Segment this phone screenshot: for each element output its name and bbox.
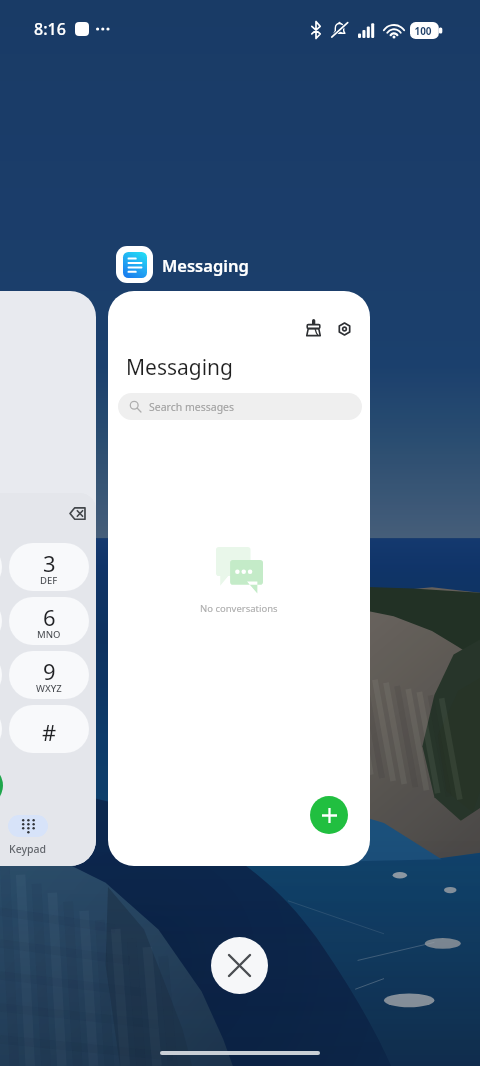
button[interactable] bbox=[0, 651, 2, 699]
staticText: 3 bbox=[43, 548, 56, 578]
button[interactable]: New conversation bbox=[310, 796, 348, 834]
staticText: Keypad bbox=[9, 842, 47, 856]
staticText: MNO bbox=[37, 628, 61, 641]
button[interactable]: Keypad bbox=[8, 815, 48, 837]
staticText: 8:16 bbox=[34, 18, 66, 40]
staticText: 6 bbox=[43, 602, 56, 632]
button[interactable] bbox=[0, 597, 2, 645]
staticText: Search messages bbox=[149, 400, 235, 414]
staticText: 100 bbox=[414, 24, 432, 38]
button[interactable] bbox=[0, 543, 2, 591]
button[interactable]: 3 bbox=[9, 543, 89, 591]
button[interactable]: Settings bbox=[330, 315, 358, 343]
button[interactable]: 6 bbox=[9, 597, 89, 645]
button[interactable]: Backspace bbox=[63, 499, 91, 527]
staticText: No conversations bbox=[200, 602, 278, 615]
button[interactable]: 9 bbox=[9, 651, 89, 699]
button[interactable] bbox=[0, 705, 2, 753]
button[interactable]: Search messages bbox=[118, 393, 362, 420]
button[interactable]: # bbox=[9, 705, 89, 753]
staticText: WXYZ bbox=[36, 682, 62, 695]
staticText: Messaging bbox=[162, 254, 249, 276]
staticText: 9 bbox=[43, 656, 56, 686]
staticText: Messaging bbox=[126, 353, 234, 382]
staticText: DEF bbox=[40, 574, 58, 587]
button[interactable]: Call bbox=[0, 765, 3, 806]
button[interactable]: Close all bbox=[211, 937, 268, 994]
staticText: # bbox=[42, 717, 57, 747]
button[interactable]: Clean up bbox=[299, 313, 327, 341]
